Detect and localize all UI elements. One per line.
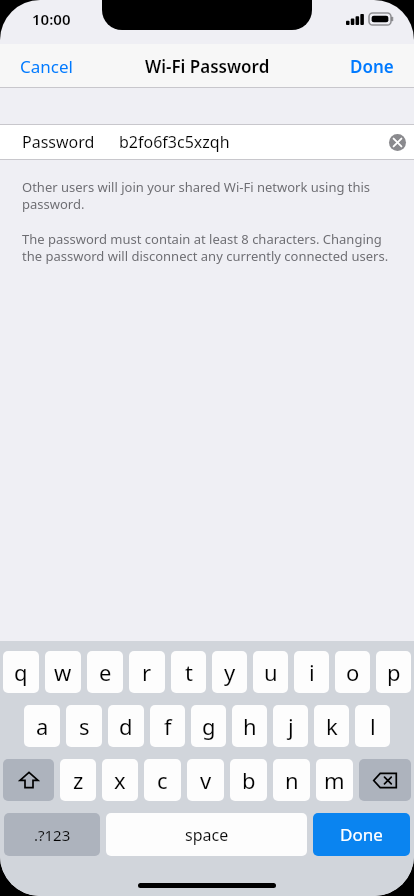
button[interactable]: m <box>316 759 353 801</box>
button[interactable]: y <box>212 651 247 693</box>
button[interactable]: l <box>355 705 390 747</box>
staticText: e <box>99 657 112 687</box>
staticText: f <box>164 711 172 741</box>
button[interactable]: Shift <box>3 759 54 801</box>
staticText: Done <box>340 823 383 846</box>
staticText: b2fo6f3c5xzqh <box>119 131 230 153</box>
button[interactable]: Password <box>0 125 414 159</box>
button[interactable]: r <box>129 651 165 693</box>
button[interactable]: Cancel <box>0 44 93 88</box>
staticText: t <box>185 657 193 687</box>
staticText: p <box>387 657 401 687</box>
button[interactable]: v <box>187 759 224 801</box>
button[interactable]: w <box>45 651 81 693</box>
button[interactable]: j <box>273 705 308 747</box>
button[interactable]: space <box>106 813 307 856</box>
button[interactable]: Backspace <box>359 759 411 801</box>
staticText: Cancel <box>20 55 73 78</box>
staticText: Done <box>350 55 394 78</box>
button[interactable]: g <box>191 705 226 747</box>
button[interactable]: e <box>87 651 123 693</box>
button[interactable]: d <box>108 705 144 747</box>
button[interactable]: c <box>144 759 181 801</box>
staticText: u <box>264 657 278 687</box>
staticText: s <box>79 711 90 741</box>
staticText: The password must contain at least 8 cha… <box>22 230 392 265</box>
staticText: Other users will join your shared Wi-Fi … <box>22 178 392 213</box>
staticText: .?123 <box>34 825 71 845</box>
staticText: w <box>54 657 72 687</box>
button[interactable]: q <box>3 651 39 693</box>
staticText: r <box>142 657 152 687</box>
button[interactable]: .?123 <box>4 813 100 856</box>
staticText: Wi-Fi Password <box>145 55 270 78</box>
staticText: space <box>185 824 229 846</box>
button[interactable]: Done <box>330 44 414 88</box>
button[interactable]: x <box>102 759 138 801</box>
button[interactable]: o <box>335 651 370 693</box>
button[interactable]: s <box>66 705 102 747</box>
button[interactable]: t <box>171 651 206 693</box>
button[interactable]: a <box>24 705 60 747</box>
button[interactable]: b <box>230 759 267 801</box>
staticText: m <box>324 765 345 795</box>
staticText: l <box>370 711 376 741</box>
staticText: n <box>285 765 299 795</box>
staticText: j <box>288 711 294 741</box>
staticText: o <box>346 657 360 687</box>
button[interactable]: Done <box>313 813 410 856</box>
staticText: d <box>119 711 133 741</box>
staticText: g <box>202 711 216 741</box>
staticText: v <box>200 765 212 795</box>
staticText: c <box>157 765 168 795</box>
button[interactable]: k <box>314 705 349 747</box>
staticText: q <box>14 657 28 687</box>
staticText: h <box>243 711 257 741</box>
staticText: k <box>326 711 338 741</box>
staticText: y <box>224 657 236 687</box>
button[interactable]: i <box>294 651 329 693</box>
staticText: Password <box>22 131 95 153</box>
button[interactable]: h <box>232 705 267 747</box>
staticText: x <box>114 765 126 795</box>
staticText: a <box>36 711 49 741</box>
button[interactable]: p <box>376 651 411 693</box>
button[interactable]: z <box>60 759 96 801</box>
staticText: 10:00 <box>32 9 71 29</box>
staticText: i <box>309 657 315 687</box>
button[interactable]: f <box>150 705 185 747</box>
button[interactable]: u <box>253 651 288 693</box>
button[interactable]: Clear text <box>380 125 414 159</box>
staticText: b <box>242 765 256 795</box>
staticText: z <box>73 765 84 795</box>
button[interactable]: n <box>273 759 310 801</box>
